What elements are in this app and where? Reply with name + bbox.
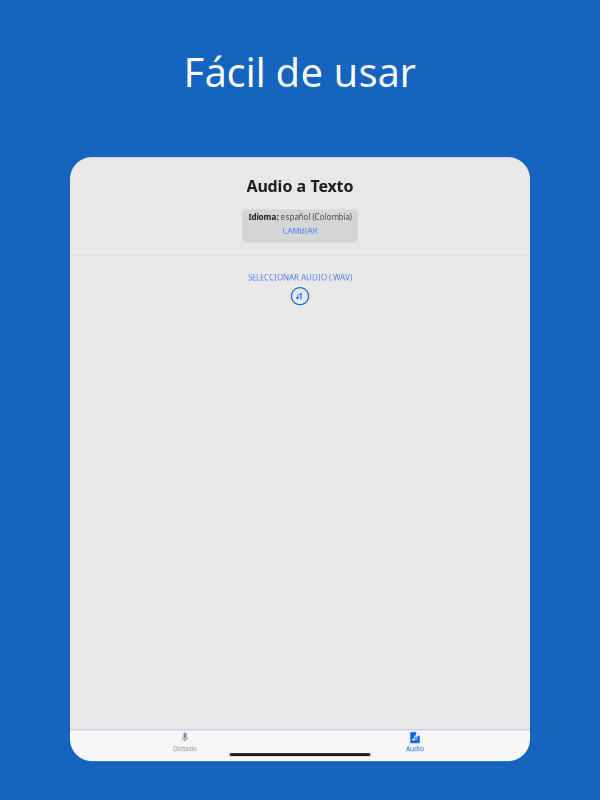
- button[interactable]: CAMBIAR: [245, 226, 355, 235]
- button[interactable]: SELECCIONAR AUDIO (.WAV): [210, 271, 390, 305]
- staticText: Audio a Texto: [246, 175, 353, 196]
- staticText: SELECCIONAR AUDIO (.WAV): [248, 272, 352, 283]
- staticText: Dictado: [173, 744, 197, 753]
- button[interactable]: Audio: [300, 730, 530, 755]
- staticText: español (Colombia): [280, 212, 351, 222]
- button[interactable]: Dictado: [70, 730, 300, 755]
- staticText: Idioma:: [248, 212, 278, 222]
- staticText: CAMBIAR: [282, 225, 317, 236]
- staticText: Audio: [406, 744, 424, 753]
- staticText: Fácil de usar: [183, 45, 416, 98]
